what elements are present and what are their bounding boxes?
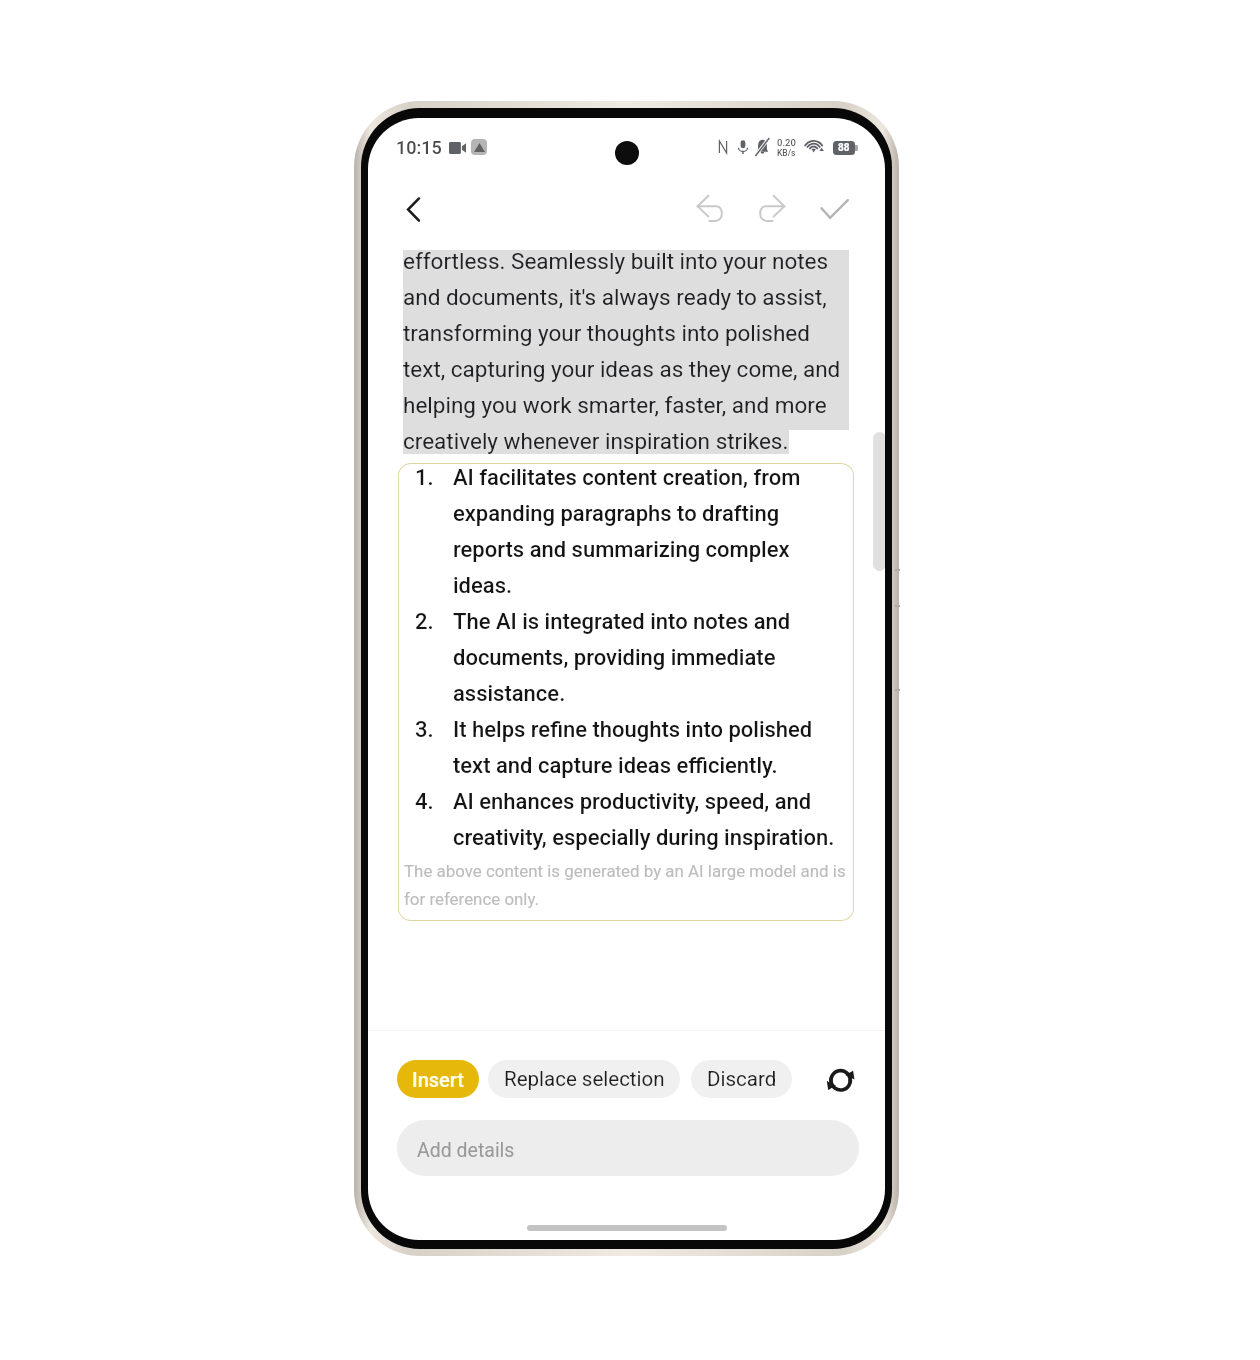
staticText: creativity, especially during inspiratio…	[453, 825, 835, 851]
button[interactable]: Discard	[691, 1060, 792, 1098]
button[interactable]: Undo	[686, 185, 734, 233]
staticText: KB/s	[777, 148, 796, 158]
button[interactable]: Replace selection	[488, 1060, 680, 1098]
staticText: The AI is integrated into notes and	[453, 609, 791, 635]
staticText: helping you work smarter, faster, and mo…	[403, 392, 827, 418]
staticText: 0.20	[777, 137, 796, 148]
staticText: ideas.	[453, 573, 513, 599]
staticText: Discard	[707, 1067, 777, 1091]
staticText: transforming your thoughts into polished	[403, 320, 810, 346]
staticText: 2.	[415, 609, 434, 635]
staticText: reports and summarizing complex	[453, 537, 790, 563]
staticText: 1.	[415, 465, 434, 491]
staticText: AI enhances productivity, speed, and	[453, 789, 812, 815]
button[interactable]: Insert	[397, 1060, 479, 1098]
staticText: The above content is generated by an AI …	[404, 861, 846, 881]
staticText: 10:15	[396, 137, 442, 158]
staticText: for reference only.	[404, 889, 540, 909]
button[interactable]: Redo	[747, 185, 795, 233]
staticText: 4.	[415, 789, 434, 815]
staticText: creatively whenever inspiration strikes.	[403, 428, 789, 454]
staticText: documents, providing immediate	[453, 645, 776, 671]
staticText: Insert	[412, 1068, 465, 1091]
staticText: Add details	[417, 1139, 515, 1162]
staticText: text, capturing your ideas as they come,…	[403, 356, 841, 382]
button[interactable]: Add details	[397, 1120, 859, 1176]
staticText: text and capture ideas efficiently.	[453, 753, 778, 779]
staticText: assistance.	[453, 681, 566, 707]
staticText: AI facilitates content creation, from	[453, 465, 801, 491]
staticText: 3.	[415, 717, 434, 743]
staticText: expanding paragraphs to drafting	[453, 501, 780, 527]
staticText: It helps refine thoughts into polished	[453, 717, 813, 743]
staticText: 88	[838, 142, 850, 154]
button[interactable]: Done	[810, 185, 858, 233]
staticText: and documents, it's always ready to assi…	[403, 284, 827, 310]
button[interactable]: Back	[389, 185, 437, 233]
staticText: effortless. Seamlessly built into your n…	[403, 248, 829, 274]
staticText: Replace selection	[504, 1067, 665, 1091]
button[interactable]: Regenerate	[819, 1056, 864, 1101]
